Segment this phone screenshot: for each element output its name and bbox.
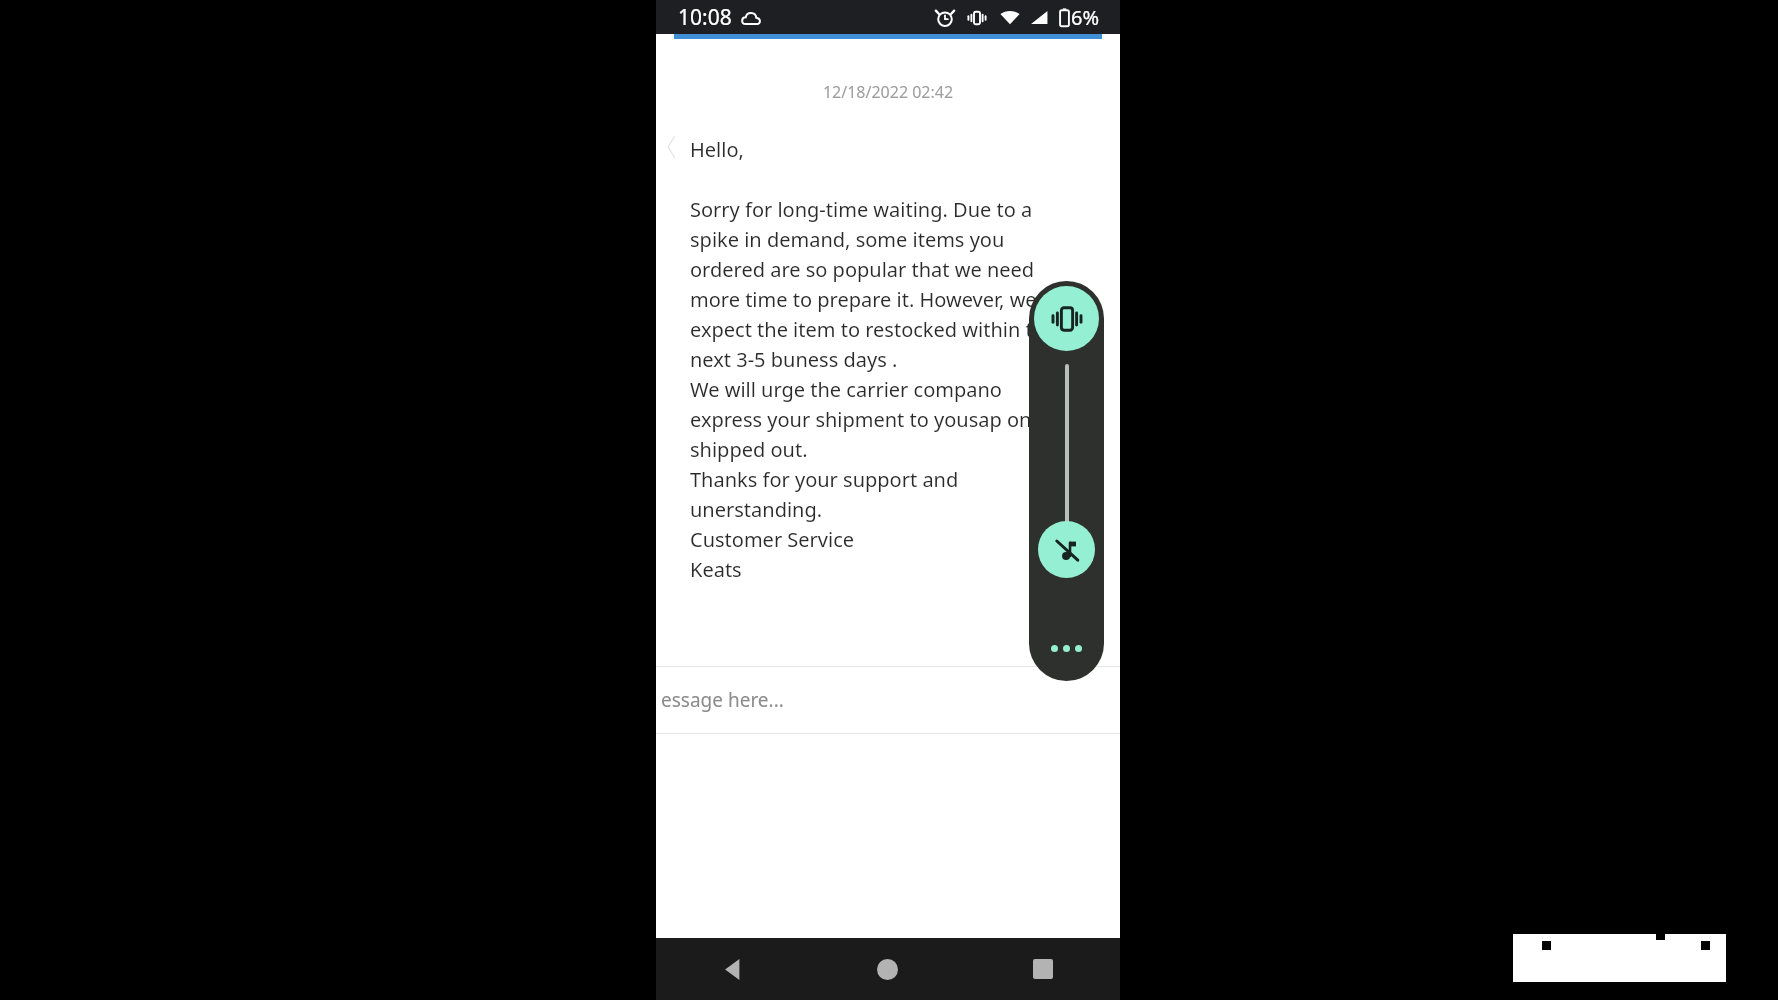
button[interactable]: Back (656, 938, 810, 1000)
staticText: Hello, Sorry for long-time waiting. Due … (690, 136, 1065, 583)
button[interactable]: Hello, Sorry for long-time waiting. Due … (675, 120, 1077, 597)
button[interactable]: Vibrate mode (1034, 286, 1099, 351)
button[interactable]: Mute media (1038, 521, 1095, 578)
staticText: essage here... (661, 687, 784, 713)
button[interactable]: Home (810, 938, 965, 1000)
button[interactable]: essage here... (656, 667, 1120, 733)
staticText: 12/18/2022 02:42 (656, 81, 1120, 103)
button[interactable]: More settings (1045, 639, 1088, 658)
staticText: 10:08 (678, 3, 732, 32)
staticText: 6% (1071, 4, 1100, 31)
button[interactable]: Recent apps (965, 938, 1120, 1000)
